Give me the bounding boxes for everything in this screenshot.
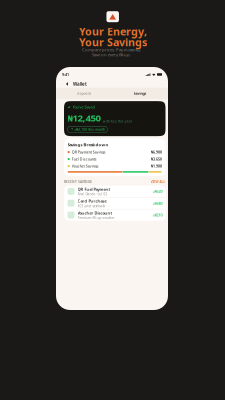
staticText: Wallet <box>73 81 87 87</box>
staticText: QR Payment Savings <box>72 150 106 154</box>
staticText: VIEW ALL <box>150 179 165 184</box>
staticText: Deposits <box>76 91 91 96</box>
staticText: +₦2,100 this month <box>74 127 105 132</box>
button[interactable]: Card Purchase <box>64 197 166 209</box>
staticText: XCS price cashback <box>77 204 105 208</box>
staticText: 9:41 <box>62 72 69 77</box>
staticText: You've Saved <box>73 105 95 110</box>
staticText: ₦6,900 <box>151 150 162 154</box>
staticText: Savings Breakdown <box>68 142 109 147</box>
staticText: ₦12,450 <box>68 111 101 124</box>
staticText: RECENT SAVINGS <box>64 179 92 184</box>
staticText: QR Fuel Payment <box>77 186 110 192</box>
button[interactable]: VIEW ALL <box>150 179 165 184</box>
staticText: Savings <box>133 91 146 96</box>
staticText: +₦210 <box>152 213 162 218</box>
staticText: Fuel Discounts <box>72 157 97 161</box>
staticText: Card Purchase <box>77 198 106 204</box>
staticText: Premium fill-up voucher <box>77 216 114 220</box>
button[interactable]: Back <box>64 80 69 87</box>
button[interactable]: Deposits <box>56 88 112 99</box>
button[interactable]: Savings <box>112 88 168 99</box>
staticText: Voucher Savings <box>72 164 99 168</box>
staticText: Your Energy, <box>79 24 147 38</box>
staticText: Total Oando • Jul 02 <box>77 192 107 196</box>
staticText: Voucher Discount <box>77 210 112 215</box>
staticText: ₦3,650 <box>151 157 162 161</box>
staticText: +₦340 <box>152 201 162 206</box>
staticText: Compare prices. Pay instantly. <box>82 47 141 52</box>
staticText: ₦1,900 <box>151 164 162 168</box>
staticText: +₦520 <box>152 189 162 194</box>
button[interactable]: Voucher Discount <box>64 209 166 221</box>
staticText: Save on every fill-up. <box>92 52 131 57</box>
button[interactable]: QR Fuel Payment <box>64 186 166 197</box>
staticText: with XCS this year <box>103 119 132 123</box>
staticText: Your Savings <box>79 35 147 49</box>
